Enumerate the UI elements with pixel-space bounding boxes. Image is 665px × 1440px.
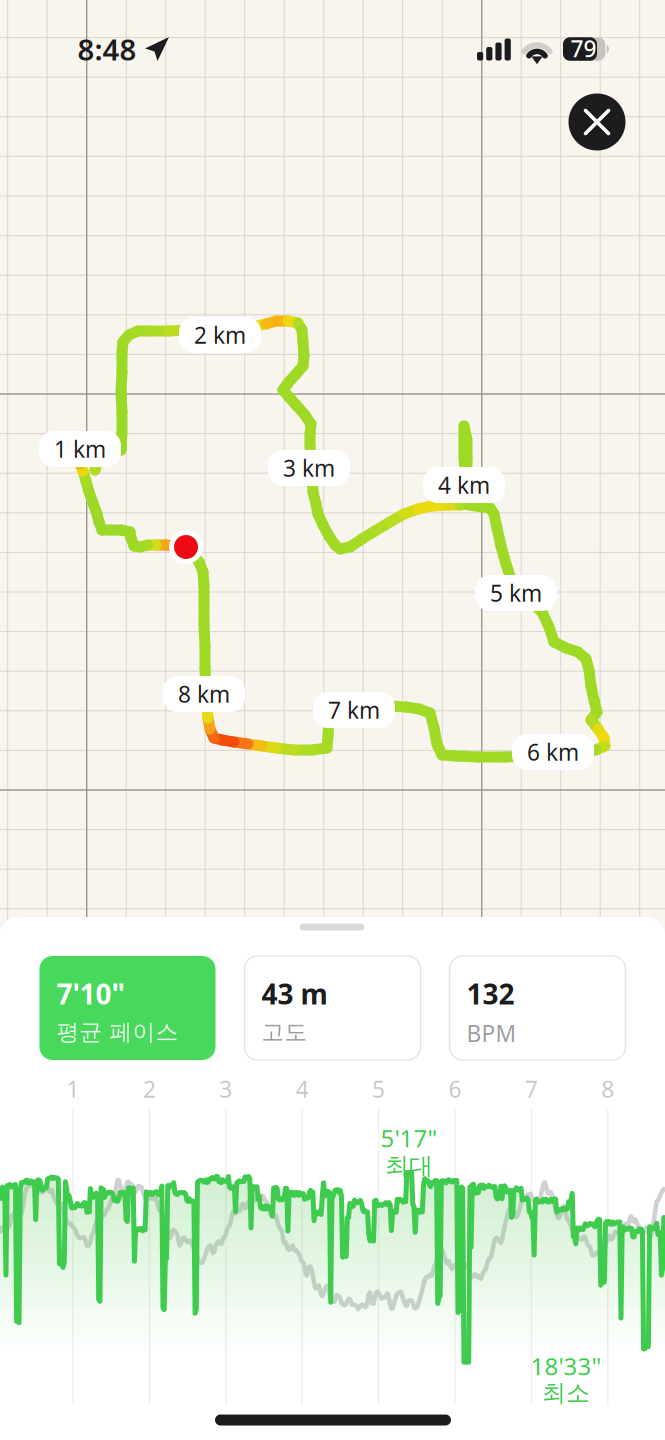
staticText: 7 km	[328, 695, 380, 725]
staticText: 6 km	[527, 737, 579, 767]
staticText: 5 km	[490, 578, 542, 608]
button[interactable]: 132	[449, 956, 625, 1060]
button[interactable]: 7'10"	[39, 956, 215, 1060]
staticText: 8 km	[178, 679, 230, 709]
staticText: 132	[466, 975, 514, 1012]
staticText: 7	[525, 1074, 538, 1104]
button[interactable]: 43 m	[244, 956, 420, 1060]
staticText: 8	[601, 1074, 614, 1104]
staticText: 8:48	[77, 29, 136, 68]
staticText: 7'10"	[56, 975, 124, 1012]
staticText: 2	[143, 1074, 156, 1104]
staticText: 43 m	[261, 975, 327, 1012]
staticText: 1 km	[54, 434, 106, 464]
staticText: 4 km	[438, 470, 490, 500]
staticText: 1	[66, 1074, 79, 1104]
staticText: 5'17"	[380, 1122, 437, 1154]
staticText: 3	[219, 1074, 232, 1104]
staticText: 2 km	[194, 320, 246, 350]
staticText: 5	[372, 1074, 385, 1104]
staticText: 79	[570, 33, 596, 63]
button[interactable]: Close	[568, 93, 625, 150]
staticText: 최소	[542, 1378, 590, 1408]
staticText: 고도	[261, 1018, 307, 1046]
staticText: 6	[448, 1074, 461, 1104]
staticText: 3 km	[283, 453, 335, 483]
staticText: 최대	[385, 1151, 433, 1181]
staticText: BPM	[466, 1018, 516, 1048]
staticText: 평균 페이스	[56, 1018, 178, 1046]
staticText: 18'33"	[530, 1350, 601, 1382]
staticText: 4	[296, 1074, 309, 1104]
